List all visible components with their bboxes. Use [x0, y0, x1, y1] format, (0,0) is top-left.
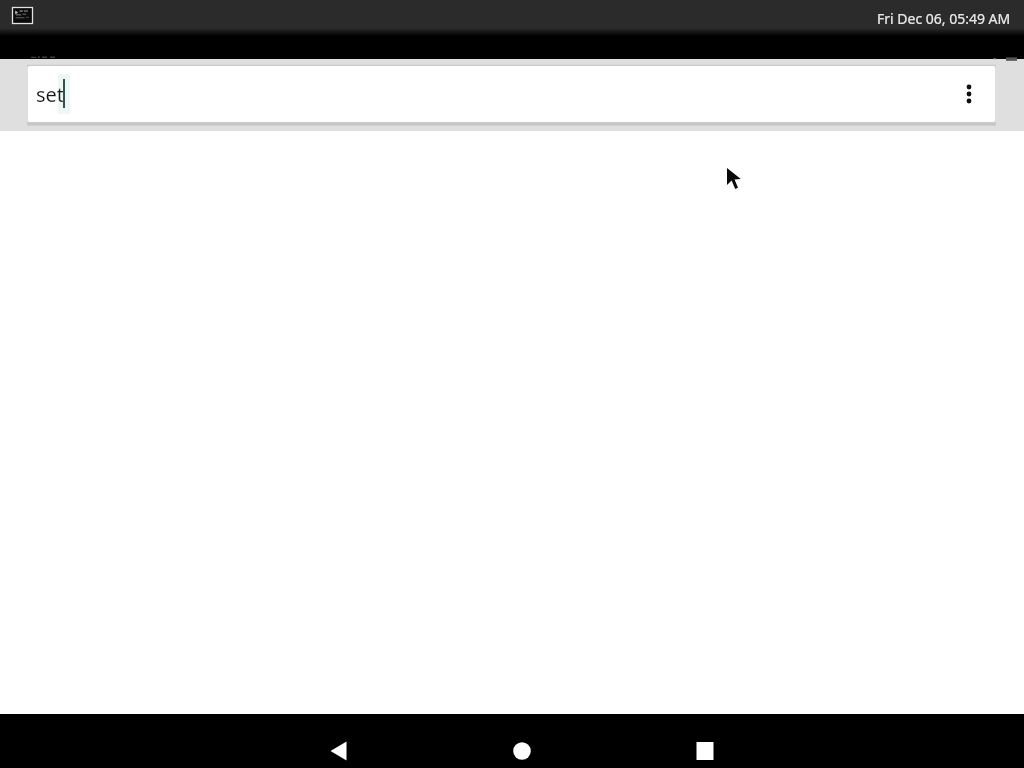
button[interactable]: Recent apps	[681, 714, 729, 768]
button[interactable]: Back	[315, 714, 363, 768]
button[interactable]: Terminal	[12, 7, 33, 24]
button[interactable]: More options	[952, 70, 986, 118]
button[interactable]: set	[28, 66, 995, 122]
staticText: set	[36, 81, 65, 108]
staticText: Fri Dec 06, 05:49 AM	[877, 9, 1011, 28]
button[interactable]: Home	[498, 714, 546, 768]
